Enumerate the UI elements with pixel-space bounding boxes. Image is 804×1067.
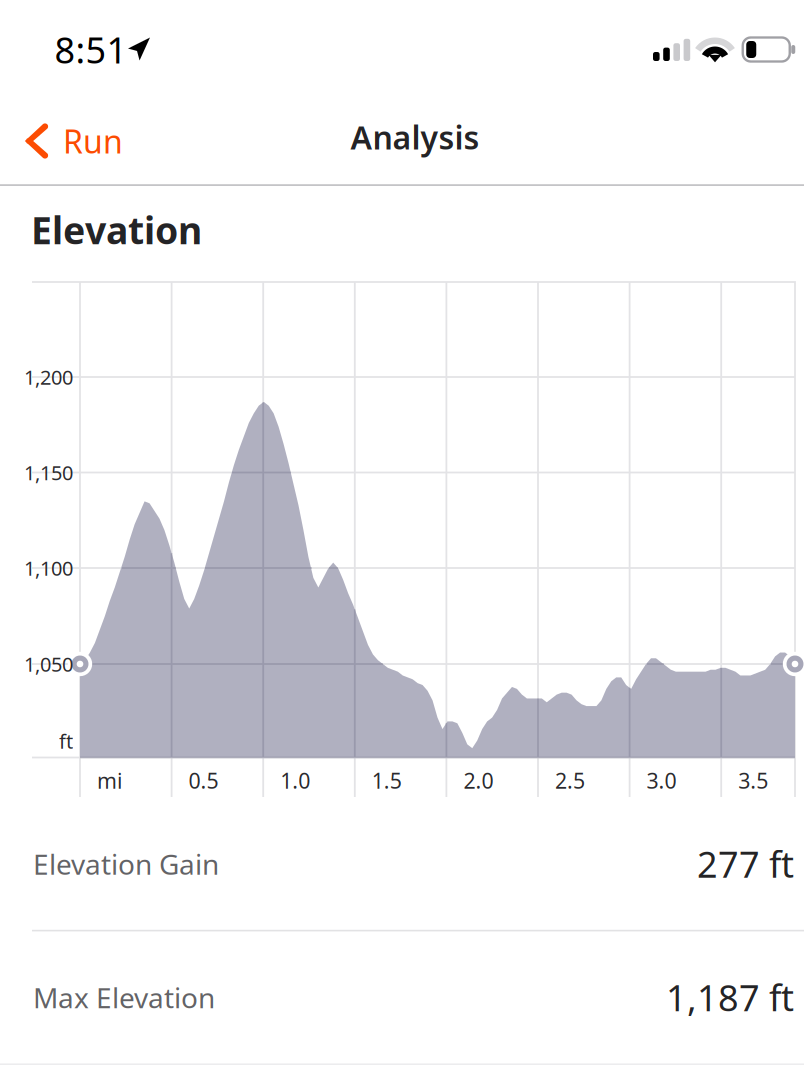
staticText: 1,100 (24, 555, 73, 581)
staticText: mi (97, 766, 123, 795)
button[interactable]: Elevation Gain (0, 798, 804, 930)
staticText: Elevation (31, 205, 202, 255)
staticText: 3.5 (738, 766, 768, 795)
button[interactable]: Run (0, 106, 143, 176)
staticText: Max Elevation (33, 979, 215, 1016)
staticText: 8:51 (54, 26, 127, 73)
staticText: 0.5 (189, 766, 219, 795)
staticText: 1.5 (372, 766, 402, 795)
staticText: 277 ft (697, 840, 794, 888)
staticText: 2.0 (463, 766, 493, 795)
staticText: 1,187 ft (666, 973, 794, 1021)
staticText: 2.5 (555, 766, 585, 795)
staticText: 1,150 (24, 459, 73, 486)
staticText: Elevation Gain (33, 845, 219, 882)
button[interactable]: Max Elevation (0, 931, 804, 1063)
staticText: Run (63, 120, 123, 162)
staticText: 3.0 (647, 766, 677, 795)
staticText: 1,050 (24, 651, 73, 677)
staticText: Analysis (350, 116, 479, 158)
staticText: 1.0 (280, 766, 310, 795)
staticText: 1,200 (24, 364, 73, 390)
staticText: ft (59, 728, 73, 754)
